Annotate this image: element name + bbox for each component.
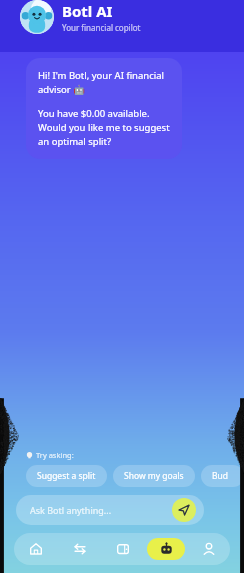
button[interactable]: Ask Botl anything... [16,495,204,525]
staticText: Hi! I'm Botl, your AI financial advisor … [38,69,164,96]
button[interactable]: Botl AI assistant [147,538,185,560]
button[interactable]: Home [14,533,58,565]
staticText: Botl AI [62,1,113,21]
staticText: Budget tips [212,470,233,482]
staticText: You have $0.00 available. Would you like… [38,107,170,148]
button[interactable]: Budget tips [201,465,244,487]
staticText: Try asking: [36,450,74,460]
button[interactable]: Wallet [101,533,144,565]
staticText: Suggest a split [37,470,96,482]
button[interactable]: Send [172,498,196,522]
button[interactable]: Profile [187,533,230,565]
staticText: Ask Botl anything... [30,504,112,516]
button[interactable]: Hi! I'm Botl, your AI financial advisor … [26,58,182,159]
staticText: Show my goals [124,470,184,482]
button[interactable]: Transfers [58,533,101,565]
button[interactable]: Suggest a split [26,465,107,487]
button[interactable]: Show my goals [113,465,195,487]
staticText: Your financial copilot [62,22,141,33]
